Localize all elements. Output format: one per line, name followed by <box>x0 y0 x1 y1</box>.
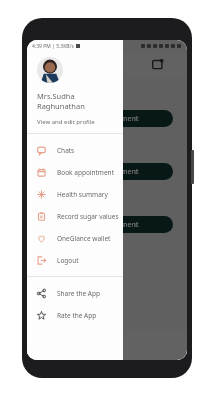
button[interactable]: Messages <box>151 58 165 72</box>
button[interactable]: Book appointment <box>41 163 173 180</box>
staticText: View and edit profile <box>37 118 95 126</box>
staticText: Chats <box>57 146 75 155</box>
button[interactable]: Chats <box>27 139 123 161</box>
button[interactable]: Profile photo <box>37 57 63 83</box>
button[interactable]: Book appointment <box>27 161 123 183</box>
staticText: Logout <box>57 256 79 265</box>
staticText: Book appointment <box>57 168 114 177</box>
button[interactable]: Record sugar values <box>27 205 123 227</box>
staticText: Health summary <box>57 190 108 199</box>
staticText: Book appointment <box>76 114 139 124</box>
button[interactable]: Book appointment <box>41 110 173 127</box>
staticText: Book appointment <box>76 167 139 177</box>
staticText: Share the App <box>57 289 101 298</box>
button[interactable]: Rate the App <box>27 304 123 326</box>
staticText: OneGlance wallet <box>57 234 111 243</box>
button[interactable]: Book appointment <box>41 216 173 233</box>
staticText: Record sugar values <box>57 212 119 221</box>
button[interactable]: Health summary <box>27 183 123 205</box>
button[interactable]: Share the App <box>27 282 123 304</box>
staticText: Rate the App <box>57 311 97 320</box>
button[interactable]: View and edit profile <box>37 118 95 126</box>
button[interactable]: Logout <box>27 249 123 271</box>
staticText: 4:39 PM | 5.3KB/s <box>32 43 74 50</box>
staticText: Book appointment <box>76 220 139 230</box>
staticText: Mrs.Sudha Raghunathan <box>37 91 123 111</box>
button[interactable]: OneGlance wallet <box>27 227 123 249</box>
